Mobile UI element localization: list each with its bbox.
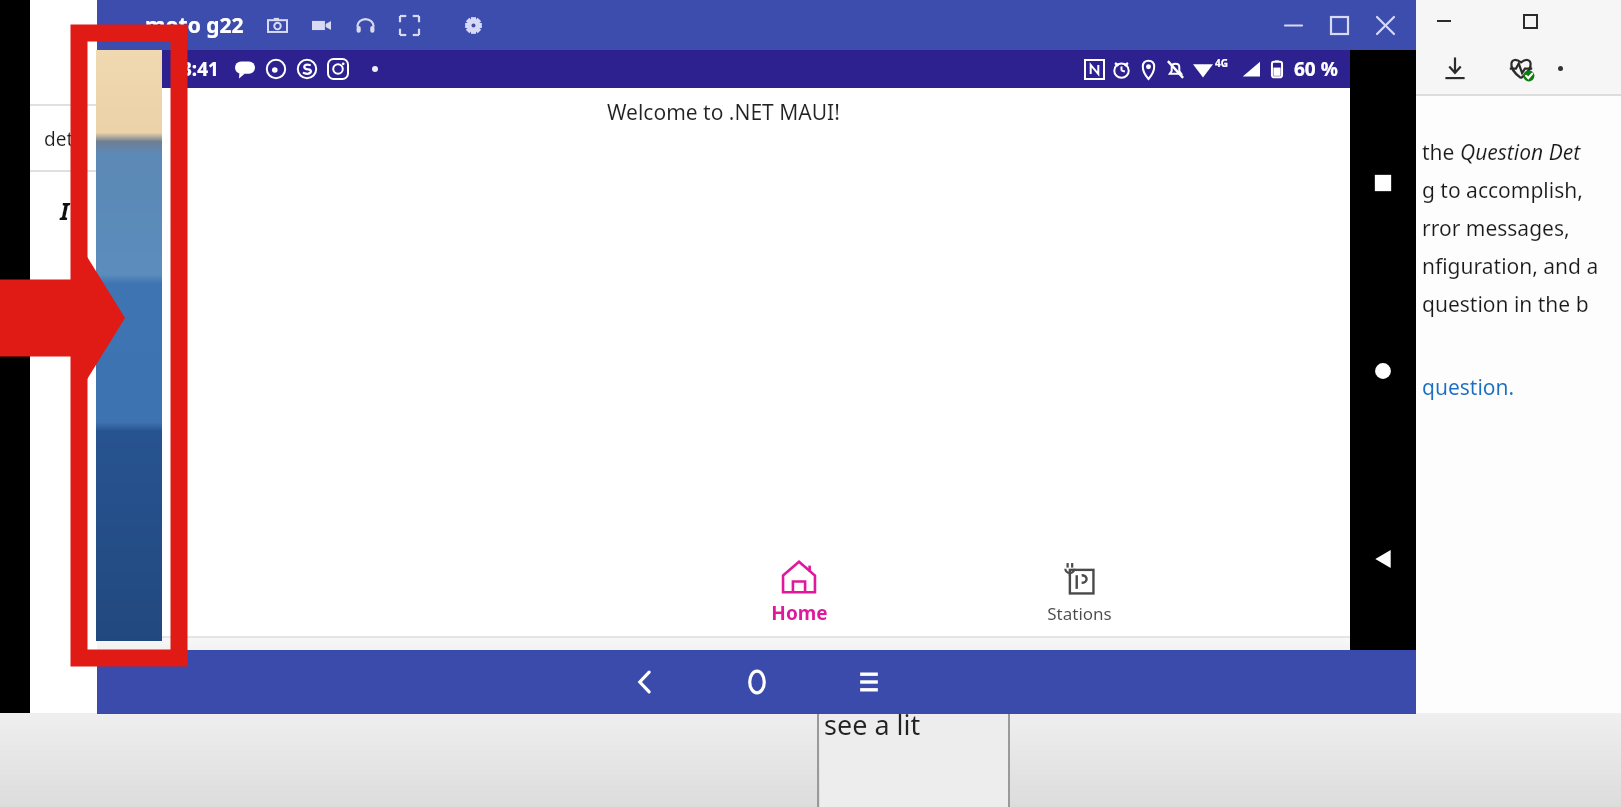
button[interactable]: Back bbox=[1360, 536, 1406, 582]
button[interactable]: Back bbox=[619, 656, 671, 708]
button[interactable]: Downloads bbox=[1434, 47, 1476, 89]
button[interactable]: Screenshot bbox=[262, 10, 292, 40]
staticText: question in the b bbox=[1422, 290, 1589, 319]
staticText: Home bbox=[771, 600, 828, 626]
button[interactable]: question. bbox=[1422, 373, 1515, 402]
staticText: 4G bbox=[1215, 56, 1228, 70]
staticText: the bbox=[1422, 138, 1460, 167]
staticText: 3:41 bbox=[181, 56, 219, 82]
button[interactable]: Browser essentials bbox=[1500, 47, 1542, 89]
button[interactable]: Home bbox=[739, 548, 859, 636]
button[interactable]: Home bbox=[1360, 348, 1406, 394]
button[interactable]: Minimize bbox=[1426, 3, 1462, 39]
button[interactable]: Overview bbox=[1360, 160, 1406, 206]
staticText: nfiguration, and a bbox=[1422, 252, 1599, 281]
staticText: 60 % bbox=[1294, 56, 1338, 82]
button[interactable]: Minimize bbox=[1270, 0, 1316, 50]
button[interactable]: Close bbox=[1362, 0, 1408, 50]
button[interactable]: Fullscreen bbox=[394, 10, 424, 40]
button[interactable]: Maximize bbox=[1512, 3, 1548, 39]
button[interactable]: Audio bbox=[350, 10, 380, 40]
staticText: Stations bbox=[1047, 602, 1112, 625]
button[interactable]: Maximize bbox=[1316, 0, 1362, 50]
button[interactable]: Stations bbox=[1019, 548, 1139, 636]
staticText: Question Det bbox=[1460, 138, 1581, 167]
staticText: det bbox=[44, 126, 74, 152]
button[interactable]: Home bbox=[731, 656, 783, 708]
staticText: Welcome to .NET MAUI! bbox=[607, 98, 840, 127]
staticText: g to accomplish, bbox=[1422, 176, 1583, 205]
staticText: rror messages, bbox=[1422, 214, 1570, 243]
staticText: I bbox=[60, 194, 70, 227]
staticText: moto g22 bbox=[145, 11, 244, 40]
button[interactable]: Recents bbox=[843, 656, 895, 708]
staticText: see a lit bbox=[824, 706, 921, 743]
button[interactable]: Record video bbox=[306, 10, 336, 40]
button[interactable]: Settings bbox=[458, 10, 488, 40]
